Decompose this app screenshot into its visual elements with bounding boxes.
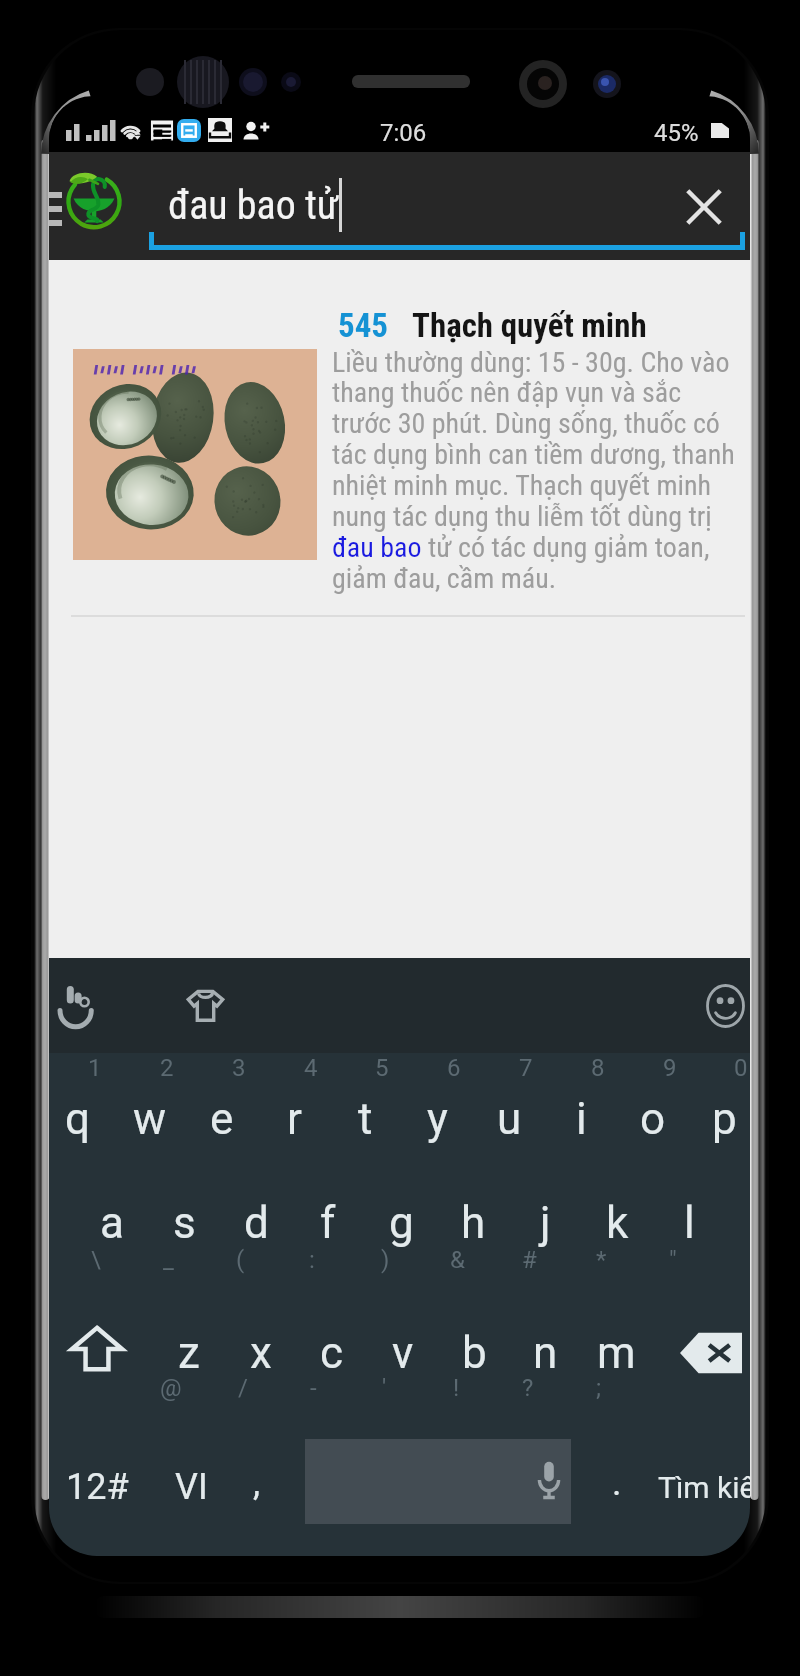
button[interactable]: ; bbox=[581, 1300, 652, 1428]
staticText: 45% bbox=[654, 119, 699, 147]
staticText: đau bao tử bbox=[168, 182, 339, 229]
staticText: u bbox=[497, 1093, 522, 1145]
button[interactable]: \ bbox=[76, 1178, 148, 1300]
staticText: & bbox=[450, 1246, 465, 1274]
staticText: @ bbox=[160, 1374, 182, 1402]
staticText: # bbox=[522, 1246, 537, 1274]
button[interactable]: Clear search bbox=[676, 179, 732, 235]
button[interactable]: 3 bbox=[186, 1053, 258, 1178]
button[interactable]: . bbox=[588, 1428, 646, 1556]
staticText: 2 bbox=[160, 1054, 174, 1082]
button[interactable]: & bbox=[437, 1178, 509, 1300]
button[interactable]: Emoji bbox=[706, 984, 745, 1028]
staticText: Tìm kiếm bbox=[658, 1470, 750, 1505]
button[interactable]: : bbox=[292, 1178, 364, 1300]
staticText: ; bbox=[596, 1374, 602, 1402]
staticText: o bbox=[640, 1093, 666, 1145]
button[interactable]: Shift bbox=[61, 1300, 133, 1428]
staticText: 1 bbox=[88, 1054, 102, 1082]
staticText: x bbox=[250, 1327, 272, 1379]
button[interactable]: 6 bbox=[401, 1053, 473, 1178]
staticText: " bbox=[669, 1246, 677, 1274]
staticText: n bbox=[533, 1327, 558, 1379]
staticText: d bbox=[244, 1197, 269, 1249]
button[interactable]: # bbox=[509, 1178, 581, 1300]
button[interactable]: Space bbox=[305, 1439, 571, 1524]
staticText: . bbox=[612, 1462, 622, 1504]
staticText: l bbox=[684, 1197, 695, 1249]
button[interactable]: _ bbox=[148, 1178, 220, 1300]
button[interactable]: 5 bbox=[329, 1053, 401, 1178]
staticText: q bbox=[65, 1093, 91, 1145]
staticText: r bbox=[287, 1093, 302, 1145]
staticText: j bbox=[540, 1197, 551, 1249]
staticText: ! bbox=[453, 1374, 460, 1402]
button[interactable]: - bbox=[296, 1300, 367, 1428]
button[interactable]: App logo bbox=[65, 158, 123, 236]
staticText: 8 bbox=[591, 1054, 605, 1082]
staticText: c bbox=[320, 1327, 344, 1379]
staticText: p bbox=[712, 1093, 737, 1145]
button[interactable]: ( bbox=[220, 1178, 292, 1300]
button[interactable]: 4 bbox=[258, 1053, 330, 1178]
staticText: i bbox=[576, 1093, 587, 1145]
staticText: 4 bbox=[304, 1054, 318, 1082]
staticText: f bbox=[320, 1197, 336, 1249]
staticText: v bbox=[392, 1327, 414, 1379]
button[interactable]: ) bbox=[365, 1178, 437, 1300]
button[interactable]: đau bao tử bbox=[149, 156, 745, 246]
staticText: _ bbox=[163, 1246, 174, 1274]
button[interactable]: ' bbox=[367, 1300, 438, 1428]
staticText: 545 bbox=[338, 306, 389, 345]
button[interactable]: " bbox=[653, 1178, 725, 1300]
staticText: 5 bbox=[375, 1054, 389, 1082]
button[interactable]: , bbox=[228, 1428, 286, 1556]
button[interactable]: 1 bbox=[49, 1053, 114, 1178]
button[interactable]: Keyboard settings bbox=[60, 986, 94, 1026]
staticText: VI bbox=[175, 1466, 208, 1508]
staticText: Liều thường dùng: 15 - 30g. Cho vào than… bbox=[332, 346, 735, 595]
staticText: \ bbox=[91, 1246, 101, 1274]
staticText: 6 bbox=[447, 1054, 461, 1082]
button[interactable]: VI bbox=[148, 1428, 234, 1556]
button[interactable]: 8 bbox=[545, 1053, 617, 1178]
staticText: m bbox=[597, 1327, 636, 1379]
staticText: 7 bbox=[519, 1054, 533, 1082]
staticText: - bbox=[310, 1374, 317, 1402]
staticText: w bbox=[133, 1093, 167, 1145]
staticText: k bbox=[606, 1197, 629, 1249]
button[interactable]: 2 bbox=[114, 1053, 186, 1178]
staticText: s bbox=[173, 1197, 196, 1249]
staticText: g bbox=[389, 1197, 414, 1249]
staticText: z bbox=[178, 1327, 200, 1379]
staticText: t bbox=[358, 1093, 373, 1145]
staticText: e bbox=[210, 1093, 234, 1145]
staticText: : bbox=[309, 1246, 315, 1274]
staticText: ? bbox=[522, 1374, 534, 1402]
button[interactable]: 0 bbox=[688, 1053, 750, 1178]
button[interactable]: ? bbox=[510, 1300, 581, 1428]
staticText: Thạch quyết minh bbox=[412, 306, 647, 345]
staticText: / bbox=[238, 1374, 248, 1402]
staticText: 7:06 bbox=[380, 119, 427, 147]
button[interactable]: ! bbox=[439, 1300, 510, 1428]
button[interactable]: Backspace bbox=[675, 1300, 747, 1428]
button[interactable]: 9 bbox=[617, 1053, 689, 1178]
button[interactable]: Themes bbox=[185, 985, 226, 1025]
staticText: ' bbox=[382, 1374, 387, 1402]
button[interactable]: Menu bbox=[49, 192, 62, 226]
button[interactable]: 7 bbox=[473, 1053, 545, 1178]
button[interactable]: 12# bbox=[49, 1428, 145, 1556]
staticText: a bbox=[100, 1197, 124, 1249]
button[interactable]: / bbox=[225, 1300, 296, 1428]
button[interactable]: @ bbox=[153, 1300, 224, 1428]
staticText: y bbox=[427, 1093, 448, 1145]
staticText: ) bbox=[381, 1246, 390, 1274]
staticText: 3 bbox=[232, 1054, 246, 1082]
staticText: 12# bbox=[66, 1466, 129, 1508]
button[interactable]: Tìm kiếm bbox=[645, 1428, 750, 1556]
staticText: , bbox=[253, 1462, 261, 1504]
button[interactable]: * bbox=[581, 1178, 653, 1300]
staticText: h bbox=[461, 1197, 486, 1249]
staticText: 0 bbox=[734, 1054, 748, 1082]
